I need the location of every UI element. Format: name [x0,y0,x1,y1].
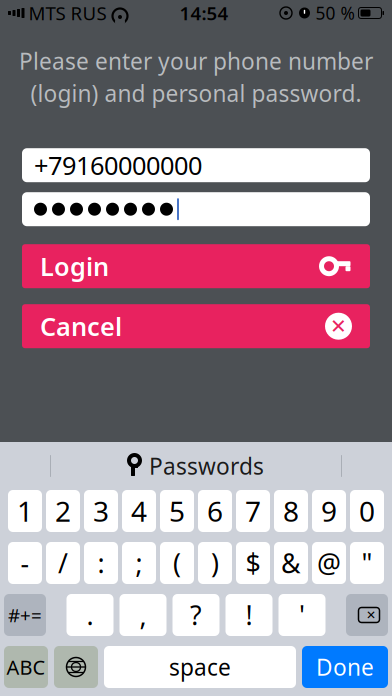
button[interactable]: Done [302,646,388,688]
button[interactable]: ! [225,594,272,636]
staticText: / [58,545,68,581]
button[interactable]: @ [312,542,346,584]
staticText: , [139,597,146,633]
button[interactable]: space [104,646,296,688]
button[interactable]: 8 [274,490,308,532]
button[interactable]: 1 [8,490,42,532]
button[interactable]: ? [172,594,219,636]
button[interactable]: - [8,542,42,584]
button[interactable]: 2 [46,490,80,532]
button[interactable]: ) [198,542,232,584]
staticText: 6 [207,492,223,530]
button[interactable]: 4 [122,490,156,532]
staticText: Passwords [149,451,264,481]
button[interactable]: 0 [350,490,384,532]
staticText: ( [173,545,181,581]
staticText: ABC [6,654,45,680]
button[interactable]: 7 [236,490,270,532]
button[interactable]: ' [278,594,325,636]
button[interactable]: Login [22,244,370,288]
button[interactable]: ABC [4,646,48,688]
staticText: ✕ [366,608,376,622]
staticText: space [169,652,231,682]
button[interactable]: Passwords [114,445,278,487]
staticText: ' [299,597,305,633]
button[interactable]: 9 [312,490,346,532]
staticText: 7 [245,492,261,530]
staticText: 14:54 [179,1,228,25]
staticText: $ [245,545,260,581]
button[interactable]: & [274,542,308,584]
staticText: & [281,545,301,581]
staticText: Please enter your phone number [19,46,373,76]
staticText: (login) and personal password. [30,78,361,108]
button[interactable]: , [119,594,166,636]
staticText: +79160000000 [34,148,202,182]
staticText: Login [40,249,109,283]
staticText: 3 [93,492,109,530]
button[interactable]: 3 [84,490,118,532]
staticText: . [86,597,93,633]
staticText: ! [245,597,252,633]
button[interactable]: ; [122,542,156,584]
staticText: 1 [17,492,33,530]
staticText: 8 [283,492,299,530]
staticText: @ [317,545,341,581]
button[interactable]: #+= [4,594,46,636]
staticText: 2 [55,492,71,530]
staticText: - [20,545,29,581]
button[interactable]: Next keyboard [54,646,98,688]
button[interactable]: $ [236,542,270,584]
staticText: " [361,545,372,581]
staticText: ; [135,545,142,581]
button[interactable]: Backspace [346,594,388,636]
staticText: ✕ [330,315,347,338]
staticText: 4 [131,492,147,530]
button[interactable]: 6 [198,490,232,532]
staticText: 5 [169,492,185,530]
button[interactable]: Cancel [22,304,370,348]
staticText: ? [190,597,202,633]
button[interactable]: ( [160,542,194,584]
button[interactable]: / [46,542,80,584]
button[interactable] [22,192,370,226]
button[interactable]: : [84,542,118,584]
staticText: MTS RUS [28,1,106,25]
button[interactable]: +79160000000 [22,148,370,182]
staticText: 9 [321,492,337,530]
staticText: #+= [8,603,42,627]
button[interactable]: " [350,542,384,584]
staticText: : [97,545,104,581]
staticText: Done [316,652,374,682]
staticText: ) [211,545,219,581]
button[interactable]: . [66,594,113,636]
staticText: Cancel [40,309,122,343]
button[interactable]: 5 [160,490,194,532]
staticText: 0 [359,492,375,530]
staticText: 50 % [315,1,354,24]
